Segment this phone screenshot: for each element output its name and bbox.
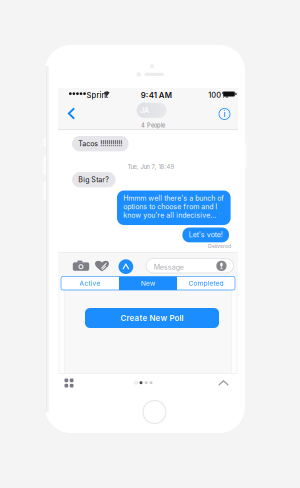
button[interactable]: Group details (214, 104, 234, 124)
staticText: Let's vote! (189, 230, 223, 239)
staticText: Message (154, 263, 184, 271)
staticText: New (141, 279, 155, 287)
button[interactable]: Create New Poll (85, 308, 219, 328)
button[interactable]: Completed (177, 276, 235, 290)
staticText: i (223, 109, 225, 119)
staticText: Sprint (86, 91, 108, 100)
staticText: Tacos !!!!!!!!!!! (78, 139, 122, 148)
staticText: Big Star? (78, 175, 109, 184)
button[interactable]: Message field (146, 259, 233, 273)
staticText: Delivered (208, 243, 231, 249)
staticText: 4 People (141, 122, 165, 129)
button[interactable]: iMessage apps (64, 378, 73, 387)
staticText: Hmmm well there's a bunch of options to … (123, 194, 224, 219)
staticText: Active (79, 279, 100, 287)
button[interactable]: JA (127, 102, 177, 127)
staticText: Completed (188, 279, 223, 287)
button[interactable]: Back (61, 103, 81, 123)
staticText: 9:41 AM (141, 90, 172, 100)
staticText: Create New Poll (120, 313, 183, 323)
button[interactable]: Expand app drawer (218, 380, 229, 386)
button[interactable]: Digital Touch (95, 260, 109, 272)
staticText: 100% (208, 91, 228, 100)
button[interactable]: New (119, 276, 177, 290)
button[interactable]: Camera (73, 261, 89, 271)
staticText: Tue, Jun 7, 18:49 (127, 163, 174, 170)
button[interactable]: Active (61, 276, 119, 290)
button[interactable]: App Store (118, 259, 133, 274)
staticText: JA (140, 106, 149, 115)
